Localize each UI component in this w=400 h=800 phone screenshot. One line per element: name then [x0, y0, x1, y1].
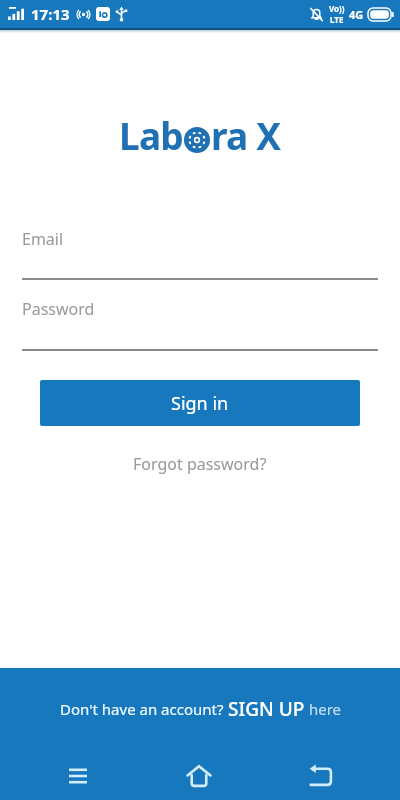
- staticText: Don't have an account?: [60, 699, 228, 719]
- staticText: Lab: [119, 110, 183, 160]
- button[interactable]: Sign in: [40, 380, 360, 426]
- staticText: 4G: [349, 7, 364, 22]
- staticText: Sign in: [171, 391, 229, 416]
- staticText: ra X: [211, 110, 281, 160]
- button[interactable]: Don't have an account?: [60, 696, 341, 722]
- staticText: Email: [22, 228, 64, 250]
- button[interactable]: [58, 756, 98, 796]
- staticText: 17:13: [31, 4, 70, 24]
- staticText: SIGN UP: [228, 696, 305, 722]
- staticText: Vo)): [329, 3, 345, 14]
- staticText: Forgot password?: [133, 453, 267, 475]
- staticText: Password: [22, 298, 95, 320]
- button[interactable]: [179, 756, 219, 796]
- button[interactable]: Forgot password?: [133, 453, 267, 475]
- button[interactable]: [300, 756, 340, 796]
- staticText: LTE: [330, 14, 344, 25]
- staticText: here: [305, 699, 341, 719]
